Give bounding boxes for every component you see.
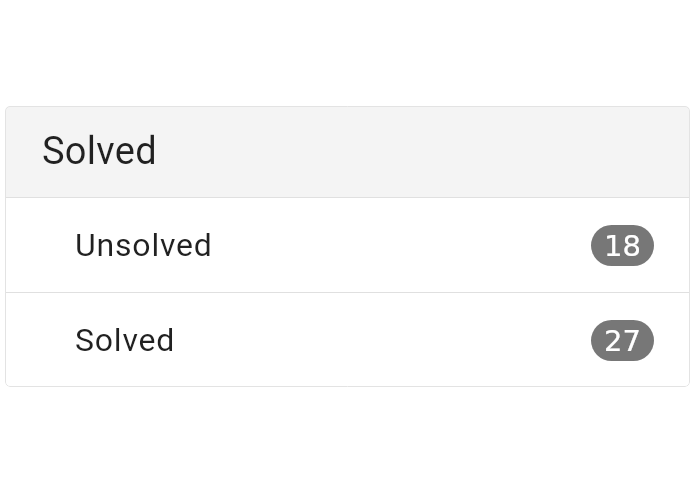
staticText: 27 <box>604 324 641 358</box>
button[interactable]: Unsolved, 18 items <box>5 198 690 292</box>
staticText: Solved <box>75 321 176 359</box>
staticText: Unsolved <box>75 226 213 264</box>
button[interactable]: Solved, 27 items <box>5 293 690 387</box>
staticText: Solved <box>42 129 158 174</box>
staticText: 18 <box>604 229 641 263</box>
button[interactable]: Solved <box>5 106 690 197</box>
